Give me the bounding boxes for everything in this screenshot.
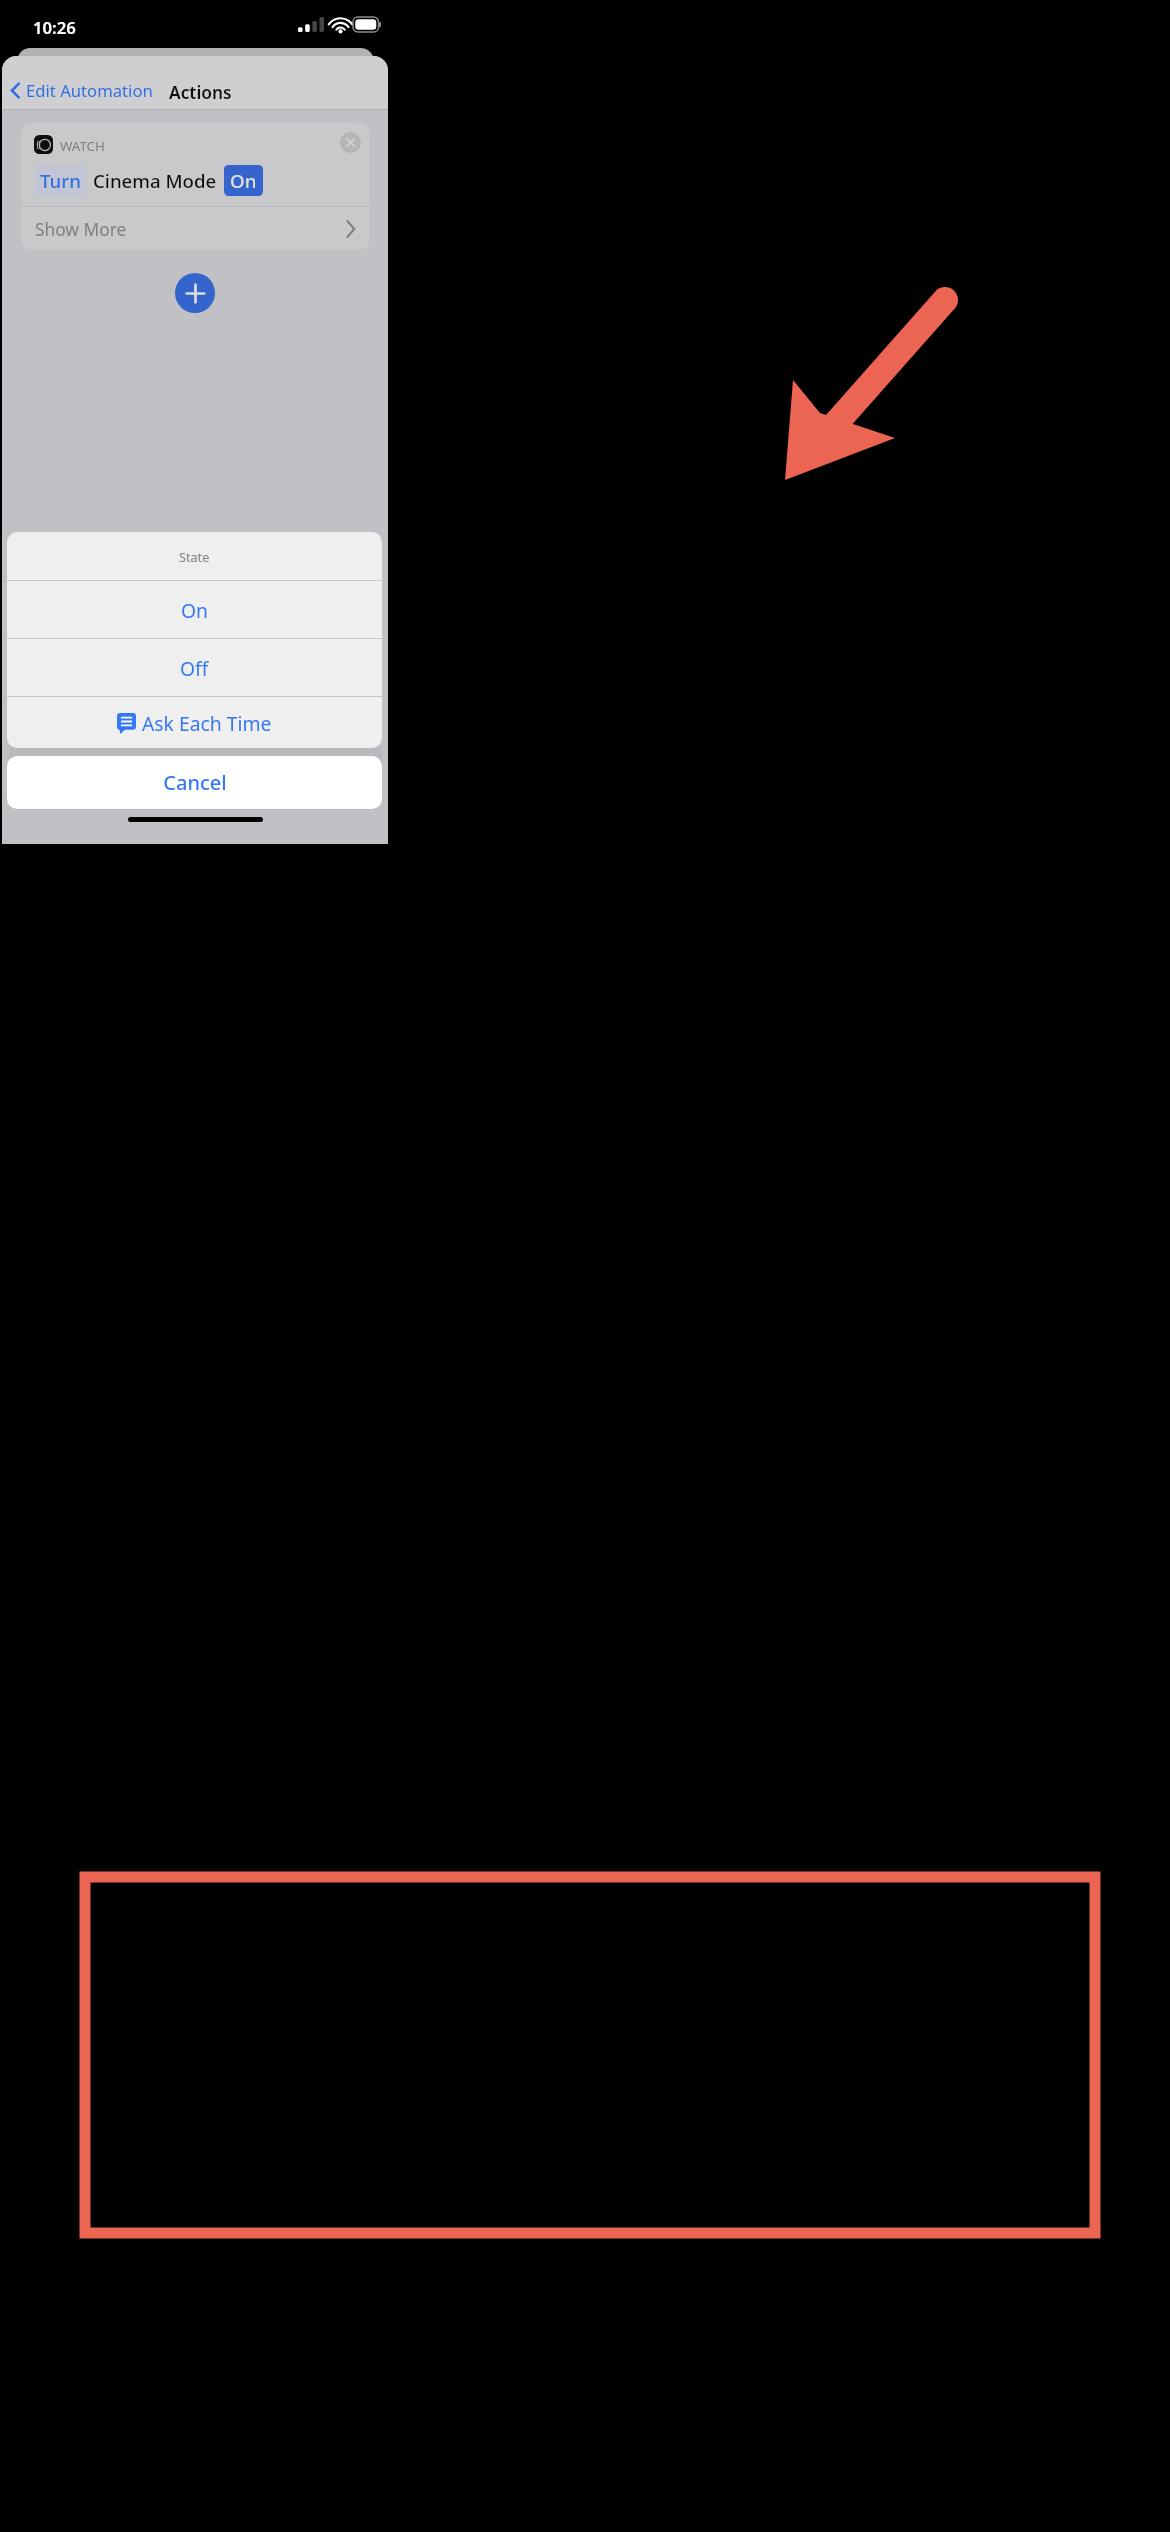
- staticText: Actions: [169, 80, 232, 104]
- button[interactable]: Show More: [21, 207, 370, 250]
- button[interactable]: Remove action: [340, 132, 361, 153]
- staticText: State: [179, 548, 210, 565]
- button[interactable]: On: [224, 165, 263, 196]
- staticText: Cinema Mode: [93, 168, 217, 193]
- staticText: WATCH: [60, 137, 105, 155]
- button[interactable]: Turn: [35, 165, 86, 196]
- staticText: Cancel: [163, 769, 227, 796]
- staticText: Ask Each Time: [142, 710, 272, 736]
- button[interactable]: WATCH: [21, 123, 370, 206]
- staticText: Off: [180, 655, 209, 681]
- button[interactable]: On: [7, 581, 382, 638]
- button[interactable]: Ask Each Time: [7, 697, 382, 748]
- staticText: On: [181, 597, 209, 623]
- staticText: Turn: [40, 168, 81, 193]
- button[interactable]: Cancel: [7, 756, 382, 809]
- staticText: Edit Automation: [26, 79, 153, 102]
- staticText: Show More: [35, 217, 127, 241]
- button[interactable]: Off: [7, 639, 382, 696]
- staticText: On: [230, 168, 257, 193]
- staticText: 10:26: [33, 16, 76, 39]
- button[interactable]: Edit Automation: [8, 77, 153, 104]
- button[interactable]: Add action: [175, 273, 215, 313]
